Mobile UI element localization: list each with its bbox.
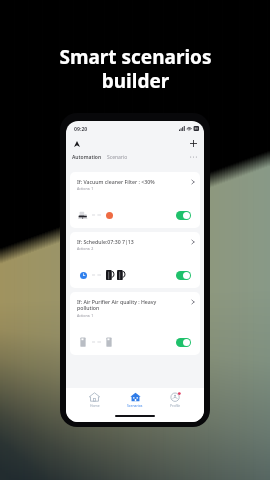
staticText: Scenarios — [127, 403, 143, 408]
staticText: Actions: 1 — [77, 313, 94, 318]
staticText: Actions: 1 — [77, 186, 94, 191]
staticText: If: Vacuum cleaner Filter : <30% — [77, 178, 155, 185]
button[interactable]: Automation — [72, 154, 102, 161]
button[interactable]: Enabled — [176, 338, 191, 347]
button[interactable]: If: Schedule:07:30 7|13 — [70, 232, 200, 288]
button[interactable]: Home — [85, 388, 104, 408]
staticText: Automation — [72, 154, 102, 161]
button[interactable]: If: Air Purifier Air quality : Heavy pol… — [70, 292, 200, 355]
staticText: If: Air Purifier Air quality : Heavy pol… — [77, 298, 157, 312]
staticText: Profile — [170, 403, 181, 408]
staticText: Scenario — [107, 154, 128, 161]
button[interactable]: Scenarios — [123, 388, 147, 408]
button[interactable]: Enabled — [176, 211, 191, 220]
button[interactable]: If: Vacuum cleaner Filter : <30% — [70, 172, 200, 228]
button[interactable]: Logo — [71, 138, 82, 149]
staticText: Home — [90, 403, 100, 408]
button[interactable]: Enabled — [176, 271, 191, 280]
staticText: 09:20 — [74, 125, 88, 132]
button[interactable]: Profile — [166, 388, 185, 408]
button[interactable]: Add automation — [188, 138, 199, 149]
staticText: Smart scenarios builder — [59, 44, 212, 93]
staticText: Actions: 2 — [77, 246, 94, 251]
button[interactable]: More options — [188, 152, 198, 162]
staticText: If: Schedule:07:30 7|13 — [77, 238, 134, 245]
button[interactable]: Scenario — [107, 154, 128, 161]
